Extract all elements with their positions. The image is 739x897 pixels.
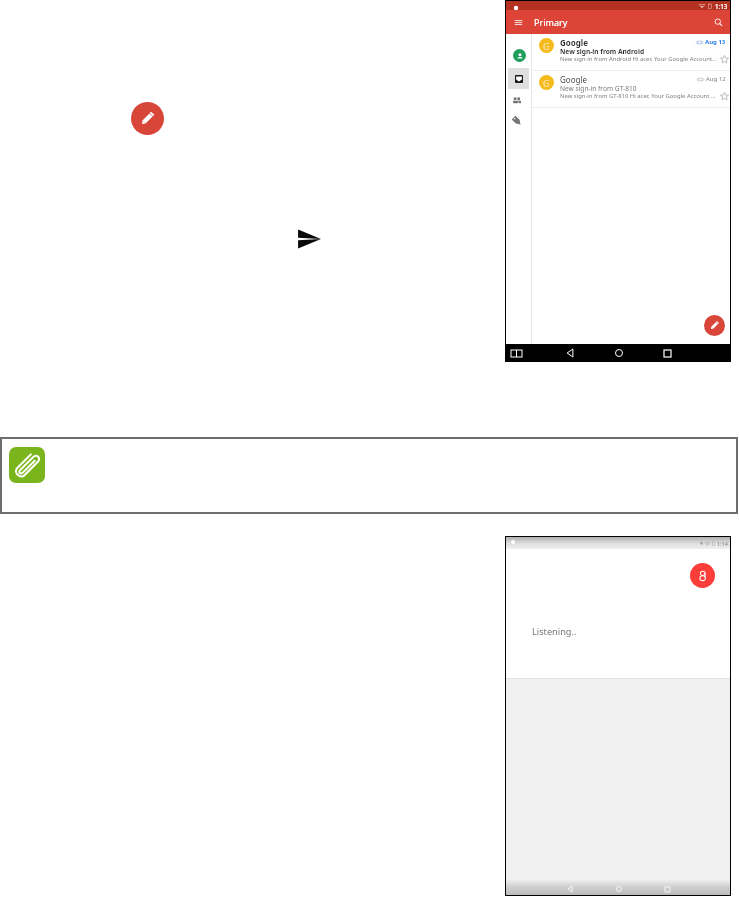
button[interactable]: Search xyxy=(710,14,726,30)
button[interactable]: G xyxy=(532,71,730,107)
button[interactable]: Star xyxy=(719,54,729,64)
staticText: 1:13 xyxy=(715,2,728,10)
button[interactable]: Home xyxy=(613,883,625,895)
button[interactable]: Star xyxy=(719,91,729,101)
staticText: Primary xyxy=(534,16,568,28)
button[interactable]: Home xyxy=(612,346,626,360)
staticText: Aug 12 xyxy=(706,75,726,83)
button[interactable]: Compose xyxy=(704,315,725,336)
staticText: Aug 13 xyxy=(705,38,726,46)
staticText: New sign-in from Android Hi acer, Your G… xyxy=(560,55,718,63)
button[interactable]: Inbox xyxy=(508,68,529,89)
button[interactable]: Recents xyxy=(661,883,673,895)
staticText: G xyxy=(543,40,550,52)
button[interactable]: Back xyxy=(564,883,576,895)
staticText: Google xyxy=(560,74,587,85)
button[interactable]: G xyxy=(532,34,730,70)
staticText: New sign-in from Android xyxy=(560,47,739,56)
staticText: Listening.. xyxy=(532,625,577,638)
button[interactable]: Attachment xyxy=(9,447,45,483)
button[interactable]: Account xyxy=(513,49,526,62)
button[interactable]: Google voice search xyxy=(690,563,715,588)
button[interactable]: Back xyxy=(563,346,577,360)
staticText: New sign-in from GT-810 Hi acer, Your Go… xyxy=(560,92,718,100)
button[interactable]: Recents xyxy=(660,346,674,360)
button[interactable]: Promotions xyxy=(511,115,523,127)
staticText: G xyxy=(543,77,550,89)
button[interactable]: Menu xyxy=(510,10,526,34)
staticText: 1:14 xyxy=(717,540,728,547)
button[interactable]: Split screen xyxy=(509,346,523,360)
staticText: New sign-in from GT-810 xyxy=(560,84,739,93)
button[interactable]: Send xyxy=(296,226,322,252)
button[interactable]: Social xyxy=(511,94,523,106)
staticText: Google xyxy=(560,37,589,48)
button[interactable]: Compose xyxy=(131,102,164,135)
